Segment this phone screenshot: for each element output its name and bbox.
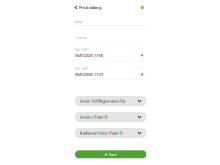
button[interactable]: Visitors (Total: 0)	[75, 112, 146, 122]
staticText: End Time*	[75, 67, 88, 70]
staticText: Additional Hosts (Total: 0)	[79, 130, 122, 136]
button[interactable]: Account	[141, 6, 144, 9]
staticText: Visitors (Total: 0)	[79, 114, 107, 120]
button[interactable]: Pre-booking	[75, 5, 102, 10]
staticText: 05/01/2025 17:00	[75, 53, 103, 58]
staticText: Name*	[75, 21, 83, 24]
button[interactable]: Additional Hosts (Total: 0)	[75, 128, 146, 138]
staticText: Purpose	[75, 36, 87, 40]
button[interactable]: Save	[75, 150, 146, 158]
staticText: Save	[109, 152, 117, 157]
staticText: Start Time*	[75, 48, 88, 51]
staticText: Visitor Self-Registration Fab	[79, 98, 125, 104]
button[interactable]: Visitor Self-Registration Fab	[75, 96, 146, 106]
staticText: Pre-booking	[79, 5, 102, 10]
staticText: 05/01/2025 17:31	[75, 72, 103, 77]
